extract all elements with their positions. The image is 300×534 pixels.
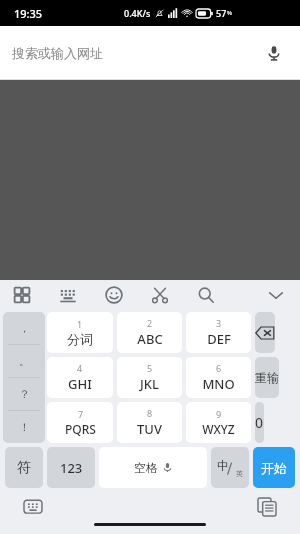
button[interactable]: 2 [117, 312, 182, 353]
button[interactable]: Voice search [260, 39, 288, 67]
staticText: 搜索或输入网址 [12, 45, 103, 61]
button[interactable]: Space [99, 447, 207, 488]
staticText: ， [19, 321, 30, 335]
staticText: 分词 [67, 331, 93, 347]
button[interactable]: Switch keyboard [22, 496, 44, 518]
staticText: MNO [202, 375, 235, 393]
staticText: 1 [77, 318, 83, 330]
button[interactable]: ？ [3, 378, 45, 410]
staticText: 19:35 [14, 6, 43, 21]
button[interactable]: 4 [47, 357, 113, 398]
staticText: 8 [147, 407, 153, 419]
button[interactable]: 7 [47, 402, 113, 443]
staticText: DEF [207, 330, 231, 348]
button[interactable]: Cut [148, 283, 172, 307]
button[interactable]: Backspace [255, 312, 275, 353]
button[interactable]: ， [3, 312, 45, 344]
staticText: GHI [68, 375, 92, 393]
staticText: ！ [19, 420, 30, 434]
staticText: 空格 [134, 460, 158, 475]
staticText: 5 [147, 362, 153, 374]
button[interactable]: Keyboard [56, 283, 80, 307]
staticText: % [227, 9, 232, 17]
button[interactable]: 9 [186, 402, 251, 443]
staticText: 0 [255, 413, 264, 432]
button[interactable]: 重输 [255, 357, 279, 398]
staticText: 英 [236, 469, 243, 478]
staticText: 6 [216, 362, 222, 374]
button[interactable]: 符 [5, 447, 43, 488]
button[interactable]: 5 [117, 357, 182, 398]
button[interactable]: 8 [117, 402, 182, 443]
staticText: 7 [78, 408, 84, 420]
staticText: JKL [140, 375, 159, 393]
staticText: 57 [216, 7, 227, 19]
button[interactable]: Search [194, 283, 218, 307]
staticText: 符 [17, 459, 31, 477]
button[interactable]: Chinese English toggle [211, 447, 249, 488]
staticText: 。 [19, 354, 30, 368]
staticText: 2 [147, 317, 153, 329]
button[interactable]: Layouts [10, 283, 34, 307]
staticText: 中 [217, 458, 229, 473]
staticText: WXYZ [202, 421, 235, 437]
staticText: ABC [137, 330, 163, 348]
staticText: PQRS [65, 421, 96, 437]
button[interactable]: 1 [47, 312, 113, 353]
staticText: 3 [216, 317, 222, 329]
button[interactable]: 3 [186, 312, 251, 353]
button[interactable]: 搜索或输入网址 [0, 26, 300, 80]
button[interactable]: Clipboard [256, 496, 278, 518]
button[interactable]: 6 [186, 357, 251, 398]
staticText: 开始 [261, 460, 287, 476]
staticText: ？ [19, 387, 30, 401]
button[interactable]: 0 [255, 402, 264, 443]
staticText: 4 [77, 362, 83, 374]
button[interactable]: Collapse keyboard [264, 283, 288, 307]
staticText: 0.4K/s [124, 7, 151, 19]
staticText: 重输 [255, 370, 279, 385]
staticText: 9 [216, 408, 222, 420]
button[interactable]: 123 [47, 447, 95, 488]
staticText: TUV [137, 420, 162, 438]
button[interactable]: ！ [3, 411, 45, 443]
button[interactable]: 开始 [253, 447, 295, 488]
button[interactable]: Emoji [102, 283, 126, 307]
staticText: 123 [60, 459, 83, 477]
